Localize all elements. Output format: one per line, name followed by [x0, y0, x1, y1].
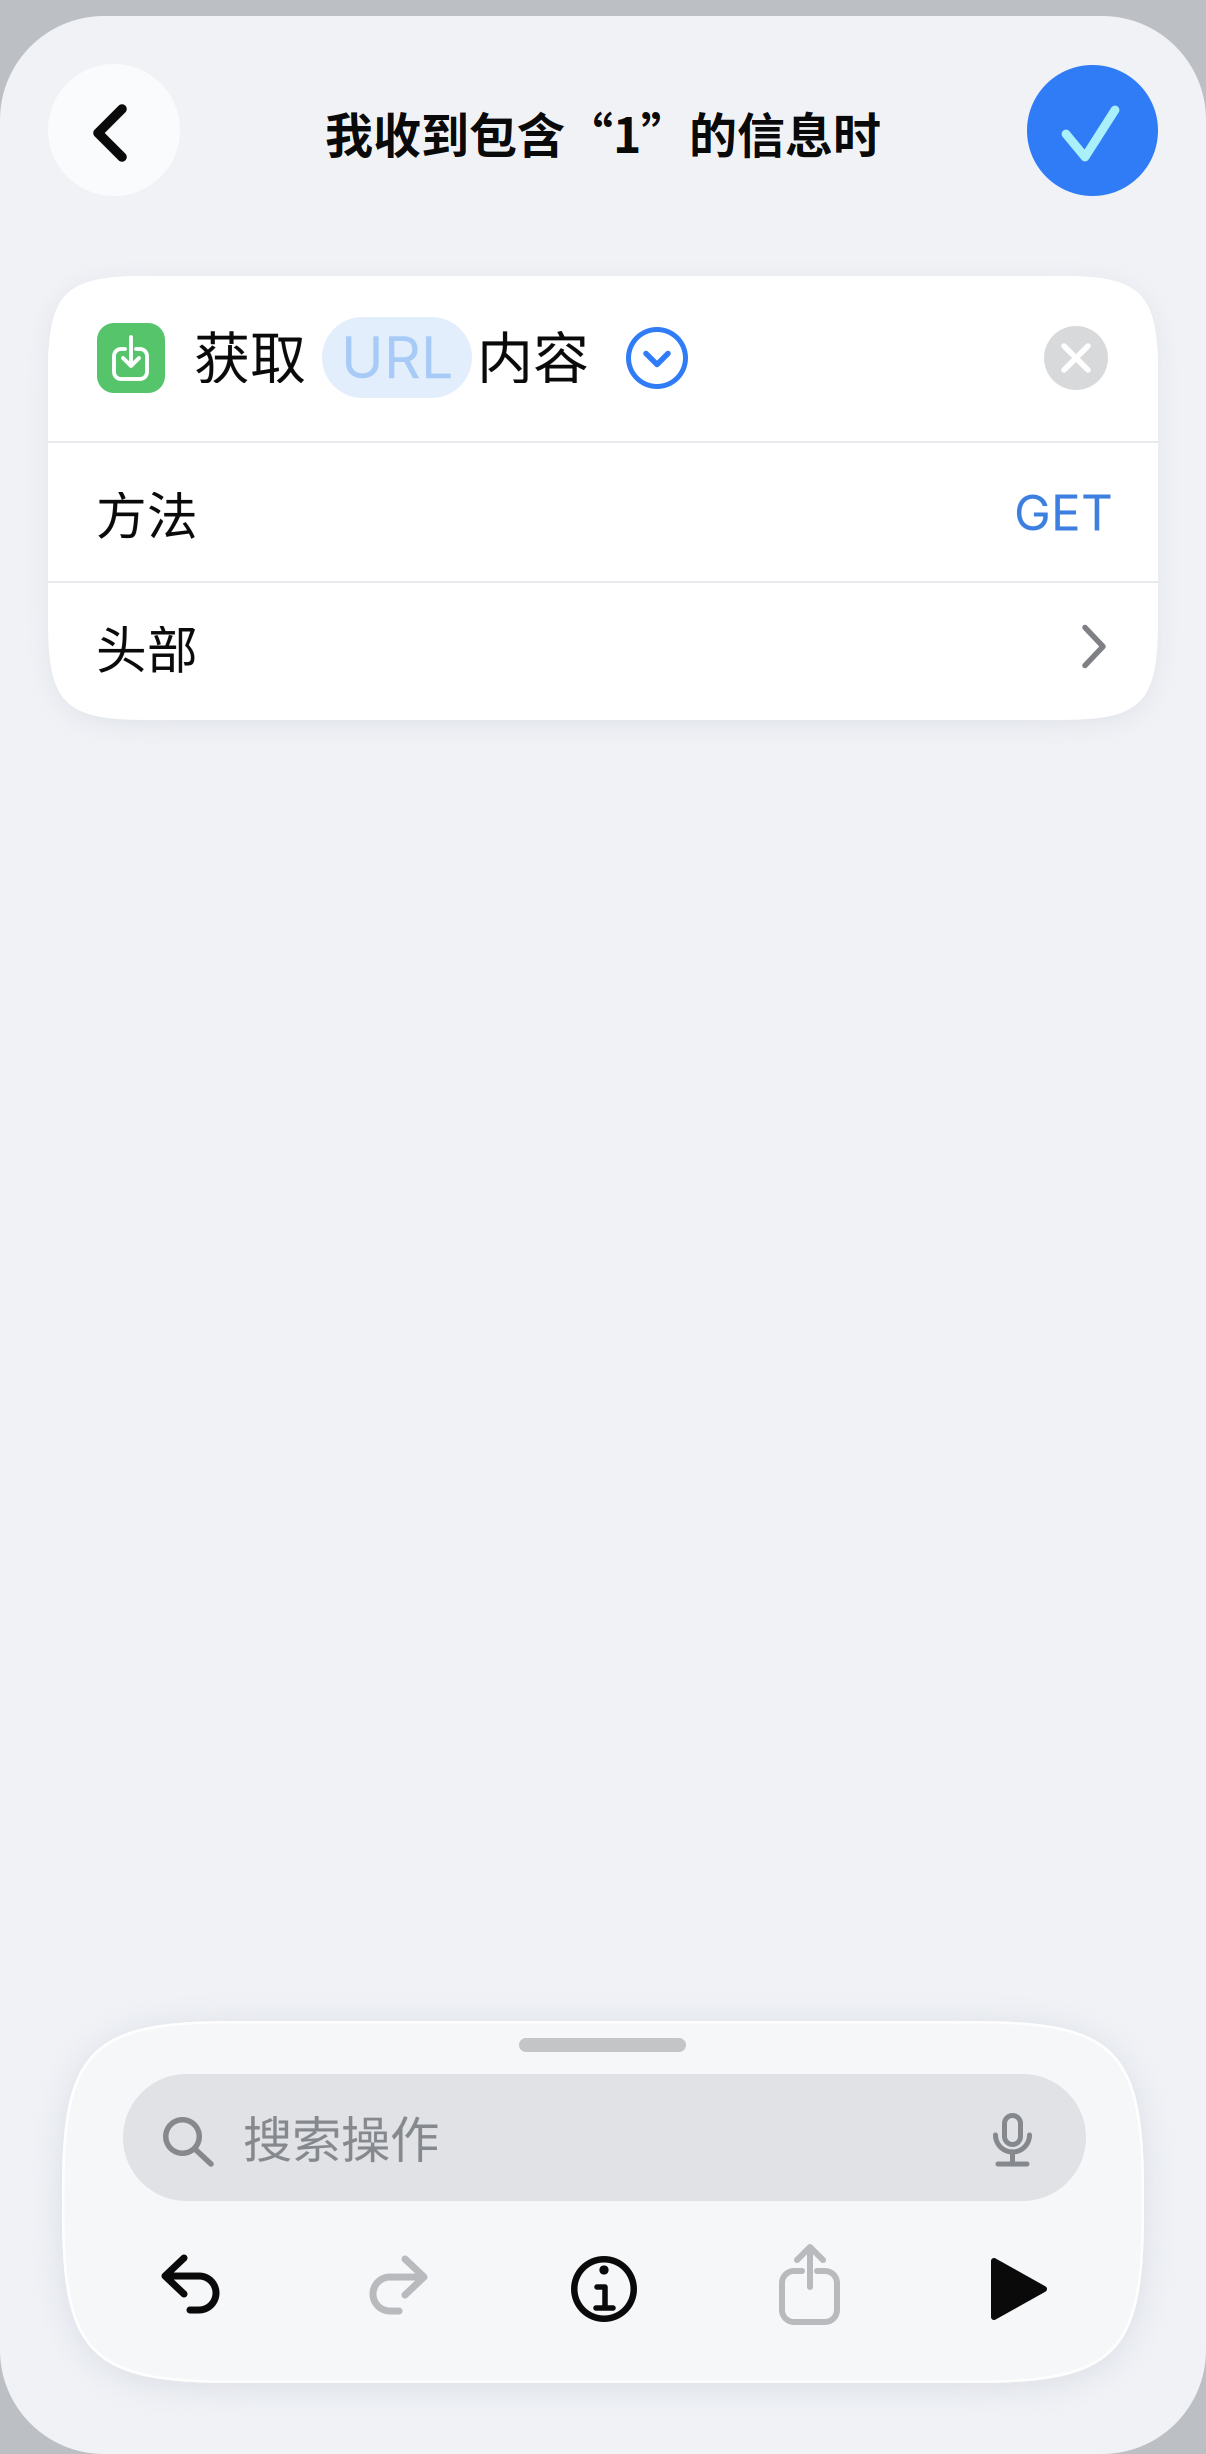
staticText: 方法: [96, 476, 198, 549]
button[interactable]: Undo: [161, 2254, 222, 2314]
button[interactable]: Details: [571, 2256, 637, 2322]
staticText: 获取: [194, 313, 306, 395]
button[interactable]: Run: [991, 2258, 1047, 2320]
button[interactable]: Done: [1027, 65, 1158, 196]
button[interactable]: 搜索操作: [123, 2074, 1086, 2201]
staticText: 我收到包含“1”的信息时: [325, 97, 881, 167]
staticText: 内容: [477, 313, 589, 395]
button[interactable]: Back: [48, 64, 180, 196]
staticText: 搜索操作: [243, 2100, 439, 2172]
button[interactable]: 头部: [48, 578, 1158, 715]
button[interactable]: Remove action: [1044, 326, 1108, 390]
button[interactable]: 方法: [48, 443, 1158, 582]
button[interactable]: Share: [781, 2247, 838, 2325]
button[interactable]: [48, 276, 1158, 442]
button[interactable]: Show more: [626, 327, 688, 389]
staticText: URL: [341, 323, 453, 392]
staticText: 头部: [96, 610, 198, 683]
button[interactable]: Redo: [367, 2255, 428, 2315]
staticText: GET: [1014, 483, 1113, 542]
